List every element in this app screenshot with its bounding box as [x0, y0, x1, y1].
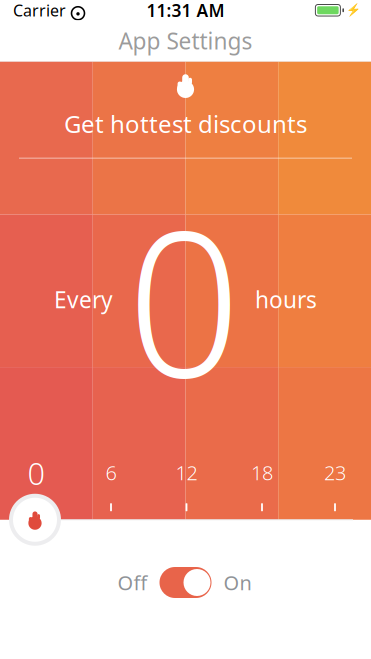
staticText: 0 [127, 167, 241, 432]
staticText: Get hottest discounts [64, 108, 307, 140]
staticText: Every [54, 284, 113, 314]
staticText: Off [117, 569, 147, 596]
staticText: 12 [175, 459, 197, 486]
staticText: hours [255, 284, 317, 314]
button[interactable]: Hours slider handle [9, 494, 61, 546]
staticText: App Settings [118, 26, 252, 56]
staticText: 6 [105, 459, 116, 486]
staticText: ⚡ [346, 3, 361, 17]
staticText: 0 [27, 453, 45, 493]
staticText: Carrier [13, 0, 66, 21]
button[interactable]: Hottest discounts, on [159, 567, 211, 598]
staticText: 11:31 AM [146, 0, 224, 22]
staticText: 18 [251, 459, 273, 486]
staticText: 23 [324, 459, 346, 486]
staticText: On [223, 569, 251, 596]
